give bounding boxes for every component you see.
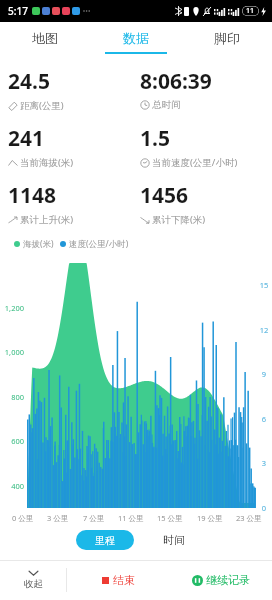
staticText: 当前速度(公里/小时) (152, 156, 238, 169)
staticText: 8:06:39 (140, 67, 212, 96)
button[interactable]: 脚印 (181, 22, 272, 62)
staticText: 时间 (163, 533, 185, 547)
button[interactable]: 数据 (90, 22, 181, 62)
button[interactable]: 继续记录 (169, 561, 272, 599)
staticText: 总时间 (152, 99, 181, 111)
staticText: 9 (256, 369, 272, 379)
staticText: 1456 (140, 181, 189, 210)
staticText: 5:17 (8, 4, 28, 18)
button[interactable]: 时间 (152, 530, 196, 550)
staticText: 15 (256, 280, 272, 290)
staticText: 里程 (95, 534, 115, 547)
button[interactable]: 收起 (0, 561, 66, 599)
staticText: 继续记录 (206, 573, 250, 587)
button[interactable]: 里程 (76, 530, 134, 550)
staticText: 12 (256, 325, 272, 335)
staticText: 脚印 (214, 30, 240, 46)
staticText: 海拔(米) (23, 238, 54, 250)
staticText: 1.5 (140, 124, 170, 153)
staticText: 23 公里 (236, 513, 262, 523)
button[interactable]: 结束 (67, 561, 169, 599)
staticText: 11 公里 (118, 513, 144, 523)
staticText: 24.5 (8, 67, 50, 96)
staticText: 15 公里 (157, 513, 183, 523)
staticText: 600 (0, 436, 24, 446)
staticText: 6 (256, 414, 272, 424)
staticText: 0 公里 (12, 513, 34, 523)
staticText: 400 (0, 481, 24, 491)
button[interactable]: 地图 (0, 22, 90, 62)
staticText: 1,000 (0, 347, 24, 357)
staticText: 数据 (123, 30, 149, 46)
staticText: 当前海拔(米) (20, 156, 74, 169)
staticText: 7 公里 (83, 513, 105, 523)
staticText: 累计下降(米) (152, 213, 206, 226)
staticText: 241 (8, 124, 45, 153)
staticText: 距离(公里) (20, 99, 64, 112)
staticText: 累计上升(米) (20, 213, 74, 226)
staticText: 速度(公里/小时) (69, 238, 129, 250)
staticText: 3 公里 (47, 513, 69, 523)
staticText: 地图 (32, 30, 58, 46)
staticText: 11 (246, 6, 255, 16)
staticText: 0 (256, 503, 272, 513)
staticText: 800 (0, 392, 24, 402)
staticText: 19 公里 (197, 513, 223, 523)
staticText: 结束 (113, 573, 135, 587)
staticText: 1,200 (0, 303, 24, 313)
staticText: 1148 (8, 181, 57, 210)
staticText: 收起 (24, 578, 43, 590)
staticText: 3 (256, 458, 272, 468)
